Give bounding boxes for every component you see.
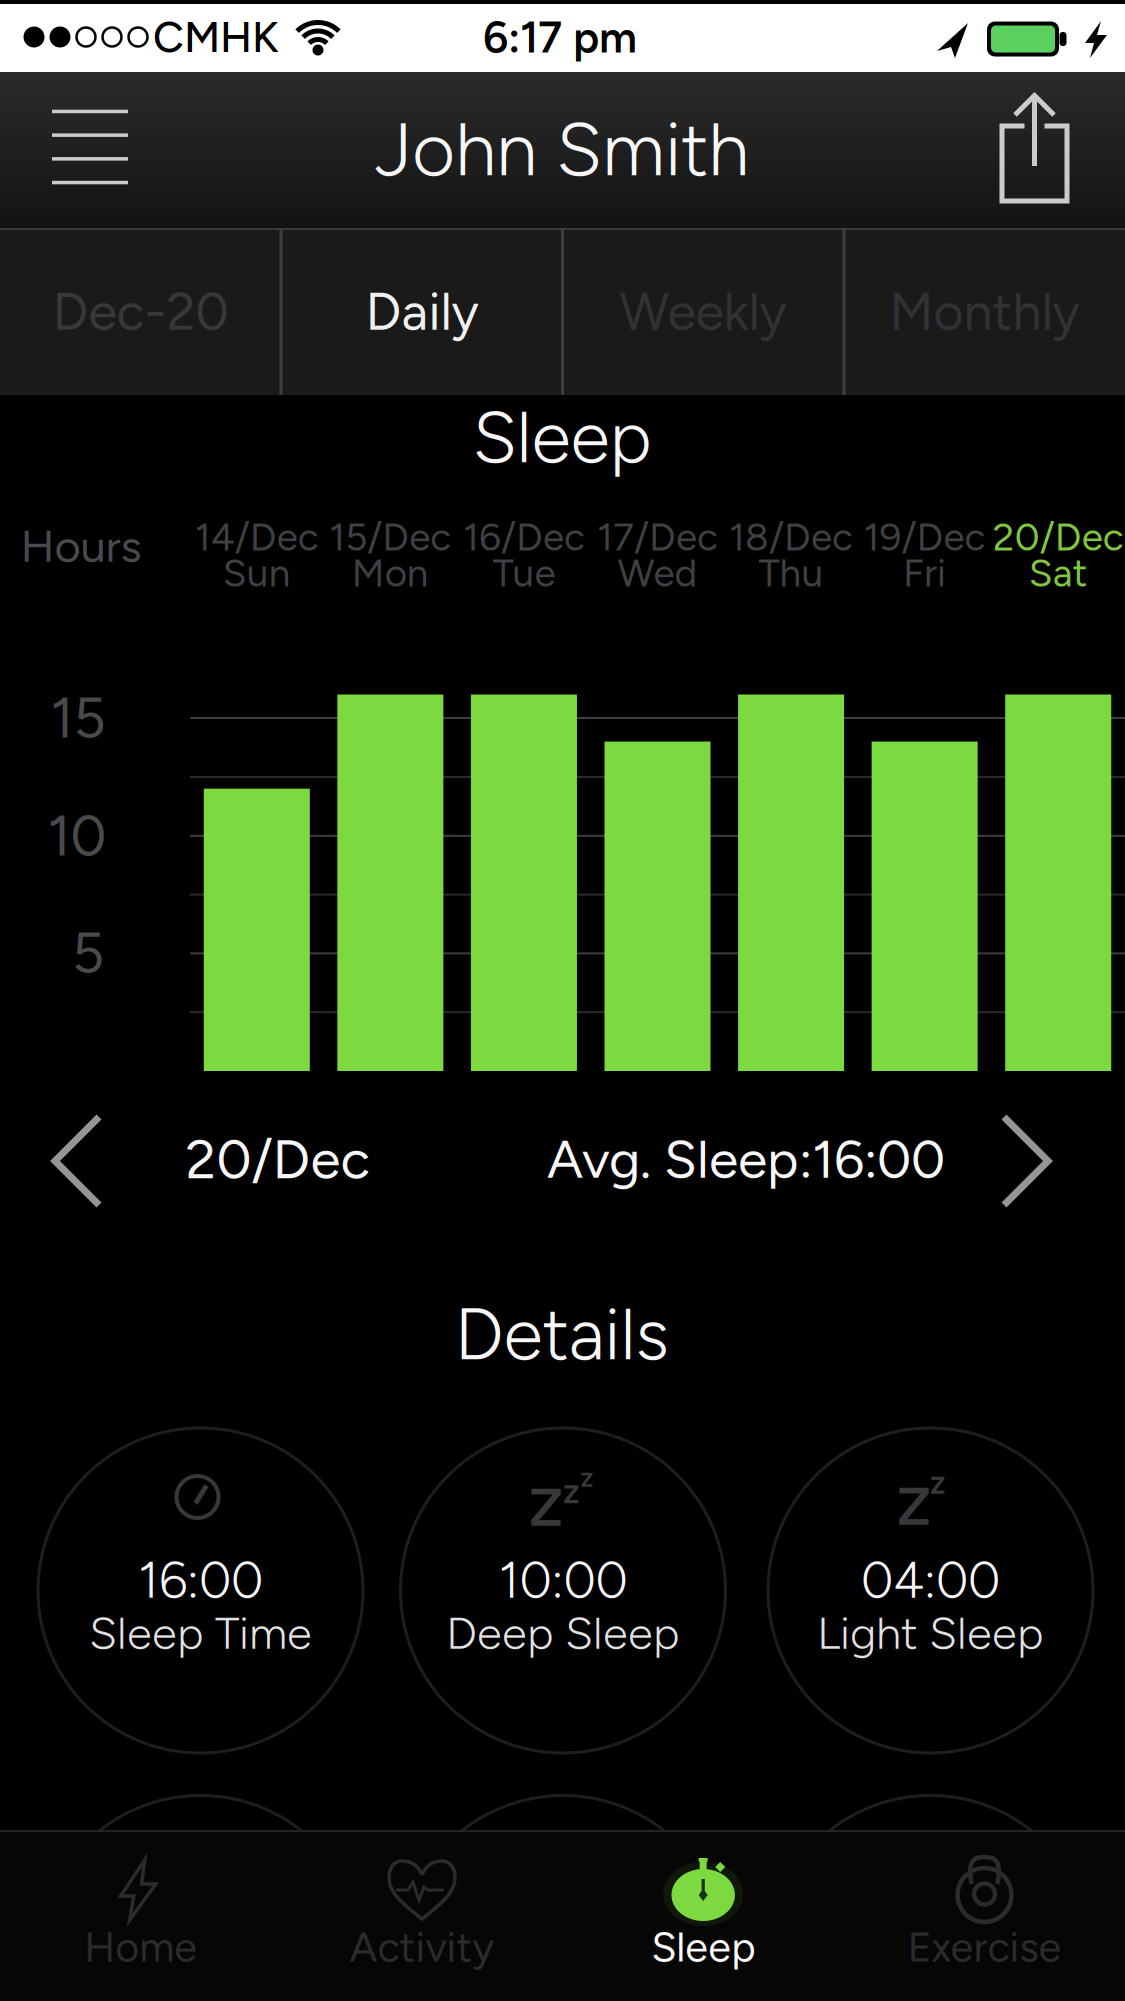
button[interactable]: Sleep	[563, 1832, 844, 2001]
staticText: Avg. Sleep:16:00	[547, 1128, 945, 1190]
staticText: 14/Dec	[195, 514, 319, 560]
staticText: Dec-20	[53, 281, 229, 342]
button[interactable]	[25, 77, 155, 217]
staticText: Sat	[1029, 550, 1088, 596]
staticText: Home	[84, 1923, 197, 1971]
button[interactable]: Activity	[281, 1832, 562, 2001]
staticText: Fri	[903, 550, 946, 596]
button[interactable]	[984, 1109, 1064, 1213]
staticText: Tue	[492, 550, 555, 596]
staticText: CMHK	[153, 12, 279, 62]
staticText: Sleep Time	[89, 1606, 312, 1659]
staticText: 20/Dec	[185, 1127, 370, 1191]
staticText: z	[580, 1462, 593, 1493]
staticText: Daily	[365, 281, 478, 342]
button[interactable]: Z	[767, 1427, 1093, 1753]
button[interactable]: Home	[0, 1832, 281, 2001]
staticText: 15	[50, 685, 105, 751]
staticText: Mon	[352, 550, 429, 596]
staticText: 16/Dec	[463, 514, 585, 560]
staticText: Details	[454, 1292, 669, 1376]
button[interactable]: 16:00	[37, 1427, 363, 1753]
button[interactable]: Monthly	[845, 229, 1123, 394]
button[interactable]: Z	[400, 1427, 726, 1753]
button[interactable]: Daily	[283, 229, 561, 394]
staticText: Activity	[349, 1923, 494, 1971]
staticText: Z	[529, 1476, 563, 1538]
button[interactable]: Dec-20	[2, 229, 280, 394]
staticText: Weekly	[620, 281, 787, 342]
staticText: Sun	[223, 550, 291, 596]
staticText: Z	[897, 1475, 931, 1537]
staticText: 17/Dec	[597, 514, 718, 560]
staticText: 10:00	[498, 1550, 627, 1610]
staticText: John Smith	[375, 105, 749, 193]
staticText: 5	[72, 920, 104, 986]
staticText: Monthly	[889, 281, 1079, 342]
staticText: Light Sleep	[817, 1606, 1044, 1659]
staticText: 04:00	[861, 1550, 1000, 1610]
button[interactable]	[984, 83, 1084, 213]
staticText: z	[563, 1471, 580, 1511]
staticText: 16:00	[138, 1550, 263, 1610]
button[interactable]: Exercise	[844, 1832, 1125, 2001]
staticText: Sleep	[472, 395, 651, 479]
staticText: Hours	[20, 519, 141, 572]
staticText: 20/Dec	[993, 514, 1124, 560]
button[interactable]: Weekly	[564, 229, 842, 394]
button[interactable]	[39, 1109, 119, 1213]
staticText: z	[930, 1464, 945, 1501]
staticText: Thu	[758, 550, 823, 596]
staticText: 19/Dec	[864, 514, 986, 560]
staticText: Exercise	[907, 1923, 1061, 1971]
staticText: Sleep	[651, 1923, 755, 1971]
staticText: 6:17 pm	[483, 11, 637, 63]
staticText: 18/Dec	[729, 514, 853, 560]
staticText: Wed	[617, 550, 697, 596]
staticText: 15/Dec	[329, 514, 451, 560]
staticText: Deep Sleep	[446, 1606, 680, 1659]
staticText: 10	[47, 803, 106, 869]
